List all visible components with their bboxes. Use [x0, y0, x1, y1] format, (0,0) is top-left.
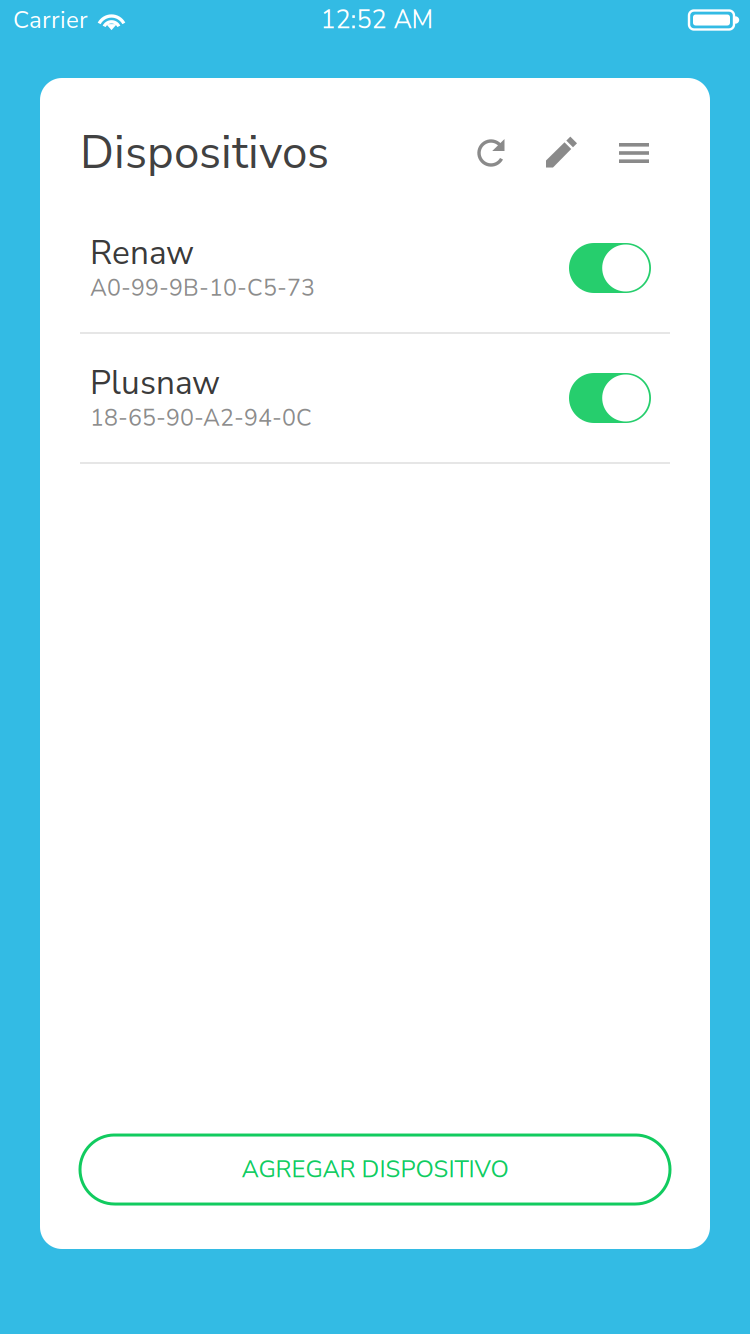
staticText: 12:52 AM [320, 3, 433, 37]
button[interactable]: Toggle device [569, 373, 651, 423]
button[interactable]: Edit [541, 133, 581, 173]
button[interactable]: Toggle device [569, 243, 651, 293]
staticText: Renaw [90, 230, 194, 276]
button[interactable]: Plusnaw [80, 334, 670, 464]
button[interactable]: Refresh [478, 133, 506, 173]
staticText: A0-99-9B-10-C5-73 [90, 272, 315, 304]
staticText: Plusnaw [90, 360, 220, 406]
staticText: Carrier [13, 4, 88, 36]
button[interactable]: AGREGAR DISPOSITIVO [80, 1135, 670, 1204]
staticText: Dispositivos [80, 122, 329, 184]
button[interactable]: Menu [619, 133, 649, 173]
button[interactable]: Renaw [80, 204, 670, 334]
staticText: 18-65-90-A2-94-0C [90, 402, 312, 434]
staticText: AGREGAR DISPOSITIVO [241, 1153, 508, 1186]
